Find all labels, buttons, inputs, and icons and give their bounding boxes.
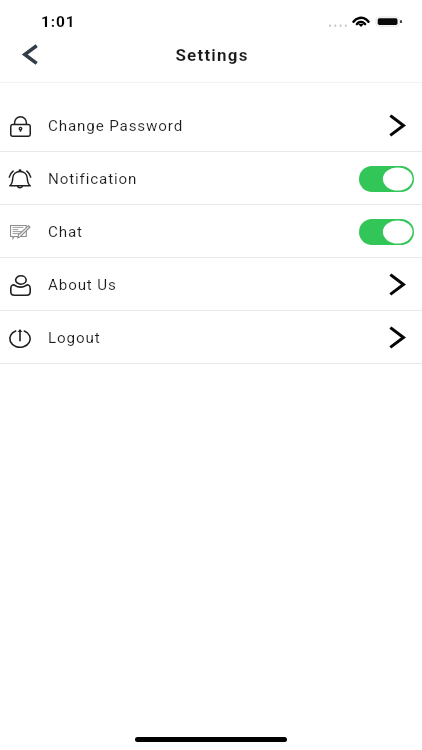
button[interactable]: Toggle (359, 166, 414, 192)
button[interactable]: Back (8, 33, 52, 76)
button[interactable]: Toggle (359, 219, 414, 245)
button[interactable]: Change Password (0, 99, 422, 152)
staticText: 1:01 (41, 13, 76, 31)
staticText: Settings (175, 45, 249, 65)
button[interactable]: About Us (0, 258, 422, 311)
staticText: Chat (48, 223, 83, 241)
button[interactable]: Logout (0, 311, 422, 364)
staticText: About Us (48, 276, 117, 294)
button[interactable]: Notification (0, 152, 422, 205)
staticText: Change Password (48, 117, 184, 135)
staticText: Notification (48, 170, 138, 188)
button[interactable]: Chat (0, 205, 422, 258)
staticText: Logout (48, 329, 101, 347)
